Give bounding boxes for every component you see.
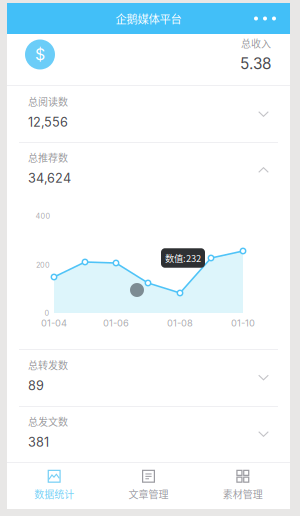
staticText: 01-06 [103,317,129,329]
button[interactable]: 总转发数 [7,349,290,406]
staticText: 381 [28,435,49,450]
staticText: 400 [35,212,50,220]
button[interactable]: 总阅读数 [7,86,290,142]
staticText: 01-10 [231,317,255,329]
staticText: 200 [36,261,50,269]
button[interactable]: 素材管理 [196,462,290,509]
button[interactable]: 数据统计 [7,462,101,509]
staticText: 34,624 [28,171,71,186]
button[interactable]: 文章管理 [101,462,196,509]
staticText: 总阅读数 [28,94,68,109]
staticText: 总推荐数 [28,150,68,165]
staticText: $ [35,45,45,64]
staticText: 数据统计 [34,487,74,501]
staticText: 01-08 [167,317,193,329]
staticText: 总转发数 [28,358,68,372]
staticText: 文章管理 [128,487,168,501]
staticText: 企鹅媒体平台 [115,10,181,27]
staticText: 12,556 [28,115,68,130]
staticText: 总发文数 [28,414,68,429]
staticText: 数值:232 [165,251,201,265]
button[interactable]: 总推荐数 [7,142,290,198]
button[interactable]: 总发文数 [7,406,290,462]
staticText: 5.38 [240,54,271,73]
staticText: 89 [28,378,44,393]
button[interactable]: More options [254,3,290,34]
staticText: 0 [44,309,49,317]
staticText: 素材管理 [223,487,263,501]
staticText: 总收入 [241,36,271,50]
staticText: 01-04 [41,317,67,329]
